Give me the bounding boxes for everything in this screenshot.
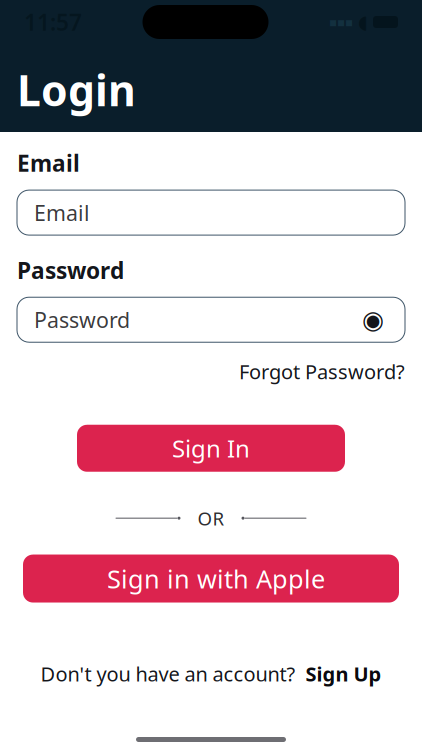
button[interactable]: Forgot Password? bbox=[239, 358, 405, 385]
staticText: Forgot Password? bbox=[239, 358, 405, 385]
button[interactable] bbox=[23, 555, 399, 603]
button[interactable]: Sign In bbox=[77, 425, 345, 472]
staticText: ▪▪▪ bbox=[329, 15, 353, 29]
staticText: Password bbox=[34, 305, 130, 334]
staticText: Sign In bbox=[172, 432, 250, 464]
button[interactable]: Show password bbox=[358, 305, 388, 335]
staticText: Sign Up bbox=[305, 661, 381, 687]
button[interactable]: Sign Up bbox=[305, 661, 381, 687]
staticText: Login bbox=[17, 61, 136, 118]
staticText: 11:57 bbox=[24, 7, 82, 37]
staticText: Sign in with Apple bbox=[107, 562, 325, 595]
staticText: ◉ bbox=[362, 305, 384, 334]
staticText: OR bbox=[197, 506, 224, 531]
staticText: Email bbox=[17, 148, 80, 178]
staticText: ◖ bbox=[358, 11, 368, 33]
staticText: Password bbox=[17, 255, 124, 285]
staticText: Email bbox=[34, 198, 90, 227]
staticText: Don't you have an account? bbox=[40, 661, 305, 687]
